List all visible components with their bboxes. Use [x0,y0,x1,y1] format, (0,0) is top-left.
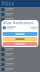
button[interactable] [1,36,38,41]
button[interactable] [0,52,40,57]
staticText: Inbox [1,1,13,6]
button[interactable] [0,12,40,17]
button[interactable] [0,7,40,12]
button[interactable] [0,17,40,22]
button[interactable] [0,57,40,62]
button[interactable] [0,47,40,52]
staticText: Allow Notifications [3,21,34,25]
button[interactable] [1,31,38,36]
button[interactable] [0,67,40,72]
button[interactable] [0,62,40,67]
button[interactable] [1,41,38,46]
